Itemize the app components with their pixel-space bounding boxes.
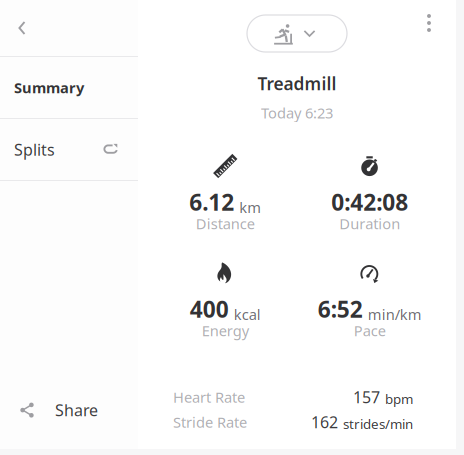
button[interactable]: Back <box>8 14 36 42</box>
staticText: strides/min <box>343 415 413 433</box>
staticText: 0:42:08 <box>331 187 408 217</box>
staticText: 6.12 <box>189 187 234 217</box>
staticText: bpm <box>385 390 413 408</box>
staticText: Summary <box>14 78 84 97</box>
button[interactable]: Share <box>0 386 138 434</box>
staticText: kcal <box>234 305 261 324</box>
staticText: Energy <box>202 321 249 340</box>
staticText: 6:52 <box>318 294 363 324</box>
staticText: 400 <box>190 294 229 324</box>
staticText: min/km <box>368 305 422 324</box>
staticText: Heart Rate <box>173 387 245 407</box>
staticText: 157 <box>353 386 380 408</box>
staticText: Stride Rate <box>173 412 247 432</box>
staticText: 162 <box>311 411 338 433</box>
staticText: Splits <box>14 139 55 160</box>
staticText: Share <box>55 399 98 421</box>
button[interactable]: Splits <box>0 119 138 181</box>
staticText: Treadmill <box>257 72 336 95</box>
staticText: Today 6:23 <box>261 103 333 122</box>
staticText: km <box>239 198 261 217</box>
staticText: Duration <box>339 214 400 233</box>
button[interactable]: More options <box>414 8 444 38</box>
staticText: Distance <box>196 214 255 233</box>
staticText: Pace <box>354 321 386 340</box>
button[interactable]: Summary <box>0 57 138 119</box>
button[interactable]: Workout type <box>247 15 347 52</box>
